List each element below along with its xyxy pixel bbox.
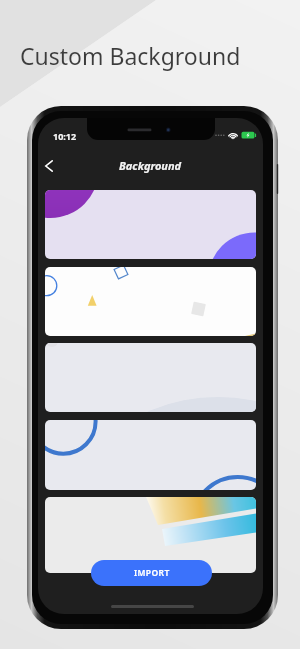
staticText: Background bbox=[119, 158, 182, 173]
staticText: IMPORT bbox=[134, 567, 170, 579]
staticText: Custom Background bbox=[20, 40, 241, 71]
staticText: 10:12 bbox=[53, 130, 77, 142]
button[interactable] bbox=[45, 267, 256, 336]
button[interactable] bbox=[45, 420, 256, 490]
button[interactable] bbox=[45, 190, 256, 259]
button[interactable]: IMPORT bbox=[91, 560, 212, 586]
button[interactable] bbox=[45, 497, 256, 573]
button[interactable] bbox=[45, 343, 256, 412]
button[interactable]: Back bbox=[39, 156, 59, 176]
